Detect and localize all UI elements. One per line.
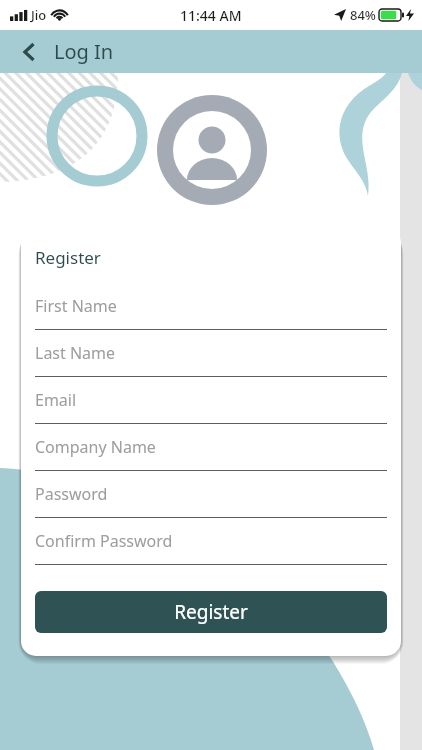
staticText: Register — [174, 599, 248, 625]
staticText: Email — [35, 389, 77, 411]
staticText: 11:44 AM — [180, 6, 242, 25]
staticText: 84% — [350, 6, 376, 24]
button[interactable]: Register — [35, 591, 387, 633]
button[interactable]: Company Name — [35, 424, 387, 471]
staticText: Jio — [31, 6, 47, 24]
button[interactable]: First Name — [35, 283, 387, 330]
button[interactable]: Password — [35, 471, 387, 518]
staticText: Company Name — [35, 436, 156, 458]
button[interactable]: Last Name — [35, 330, 387, 377]
staticText: First Name — [35, 295, 117, 317]
button[interactable]: Confirm Password — [35, 518, 387, 565]
button[interactable]: Email — [35, 377, 387, 424]
staticText: Password — [35, 483, 108, 505]
staticText: Confirm Password — [35, 530, 173, 552]
staticText: Log In — [54, 38, 114, 65]
staticText: Last Name — [35, 342, 116, 364]
button[interactable]: Back — [12, 34, 48, 70]
staticText: Register — [35, 246, 101, 269]
